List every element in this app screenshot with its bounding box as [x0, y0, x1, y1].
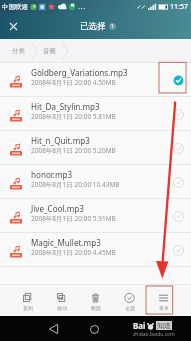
- staticText: 2008年8月1日 20:00 5.81MB: [31, 112, 116, 121]
- button[interactable]: Select: [168, 138, 188, 158]
- button[interactable]: Select: [168, 172, 188, 192]
- button[interactable]: 移动: [45, 287, 78, 315]
- staticText: 分类: [12, 47, 25, 55]
- staticText: Hit_Da_Stylin.mp3: [31, 101, 100, 112]
- staticText: 2008年8月1日 20:00 4.45MB: [31, 248, 116, 257]
- button[interactable]: 菜单: [147, 287, 180, 315]
- staticText: 11:57: [170, 2, 188, 12]
- staticText: Bai: [133, 320, 146, 331]
- button[interactable]: Close: [0, 13, 26, 39]
- staticText: 2008年8月1日 20:00 5.20MB: [31, 146, 116, 155]
- staticText: 菜单: [159, 305, 169, 311]
- staticText: 中国联通: [2, 3, 28, 11]
- button[interactable]: 分类: [11, 47, 26, 55]
- button[interactable]: Back: [41, 317, 65, 341]
- staticText: 全选: [125, 305, 135, 311]
- staticText: Magic_Mullet.mp3: [31, 237, 101, 248]
- staticText: 音频: [43, 47, 56, 55]
- button[interactable]: 删除: [79, 287, 112, 315]
- button[interactable]: Magic_Mullet.mp3: [0, 233, 191, 267]
- staticText: 2008年8月1日 20:00 10.43MB: [31, 180, 120, 189]
- staticText: 移动: [57, 305, 67, 311]
- staticText: 已选择: [80, 21, 106, 32]
- button[interactable]: Goldberg_Variations.mp3: [0, 63, 191, 97]
- button[interactable]: honor.mp3: [0, 165, 191, 199]
- button[interactable]: Home: [82, 317, 106, 341]
- button[interactable]: 复制: [11, 287, 44, 315]
- button[interactable]: Jive_Cool.mp3: [0, 199, 191, 233]
- staticText: 复制: [23, 305, 33, 311]
- staticText: Hit_n_Quit.mp3: [31, 135, 90, 146]
- staticText: 知道: [157, 321, 171, 330]
- button[interactable]: Select: [168, 240, 188, 260]
- button[interactable]: 全选: [113, 287, 146, 315]
- staticText: Jive_Cool.mp3: [31, 203, 84, 214]
- button[interactable]: Select: [168, 104, 188, 124]
- staticText: 1: [111, 23, 114, 30]
- staticText: zhidao.baidu.com: [133, 331, 175, 338]
- button[interactable]: Select: [168, 206, 188, 226]
- staticText: 2008年8月1日 20:00 5.91MB: [31, 214, 116, 223]
- staticText: Goldberg_Variations.mp3: [31, 67, 128, 78]
- button[interactable]: Hit_n_Quit.mp3: [0, 131, 191, 165]
- staticText: 删除: [91, 305, 101, 311]
- staticText: honor.mp3: [31, 169, 73, 180]
- button[interactable]: Selected: [168, 70, 188, 90]
- button[interactable]: Hit_Da_Stylin.mp3: [0, 97, 191, 131]
- button[interactable]: 音频: [42, 47, 57, 55]
- staticText: 2008年8月1日 20:00 4.50MB: [31, 78, 116, 87]
